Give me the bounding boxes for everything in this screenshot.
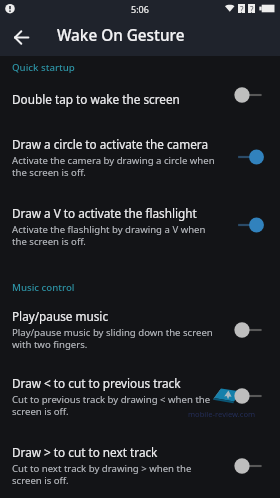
staticText: Wake On Gesture [57,25,185,46]
button[interactable]: Enabled [226,146,280,168]
button[interactable]: Draw < to cut to previous track [0,375,280,419]
button[interactable]: Disabled [226,455,280,477]
button[interactable]: Disabled [226,319,280,341]
button[interactable]: Play/pause music [0,308,280,351]
button[interactable]: Draw a V to activate the flashlight [0,205,280,248]
staticText: Quick startup [12,61,75,74]
staticText: Play/pause music [12,308,109,324]
staticText: mobile-review.com [188,409,256,419]
staticText: Play/pause music by sliding down the scr… [12,326,213,351]
button[interactable]: Double tap to wake the screen [0,91,280,107]
staticText: Draw a circle to activate the camera [12,136,209,152]
staticText: 5:06 [131,3,149,15]
staticText: ? [240,4,244,13]
staticText: Draw a V to activate the flashlight [12,205,197,221]
staticText: Cut to next track by drawing > when the … [12,462,192,487]
button[interactable]: Disabled [226,385,280,407]
button[interactable]: Enabled [226,214,280,236]
button[interactable]: Disabled [226,84,280,106]
button[interactable]: Draw > to cut to next track [0,444,280,488]
button[interactable]: Navigate up [0,18,43,56]
staticText: Activate the flashlight by drawing a V w… [12,223,206,248]
staticText: Music control [12,281,75,294]
staticText: Activate the camera by drawing a circle … [12,154,215,179]
staticText: Draw > to cut to next track [12,444,158,460]
staticText: Double tap to wake the screen [12,91,180,107]
staticText: Cut to previous track by drawing < when … [12,393,211,418]
staticText: ? [250,4,254,13]
button[interactable]: Draw a circle to activate the camera [0,136,280,180]
staticText: Draw < to cut to previous track [12,375,181,391]
